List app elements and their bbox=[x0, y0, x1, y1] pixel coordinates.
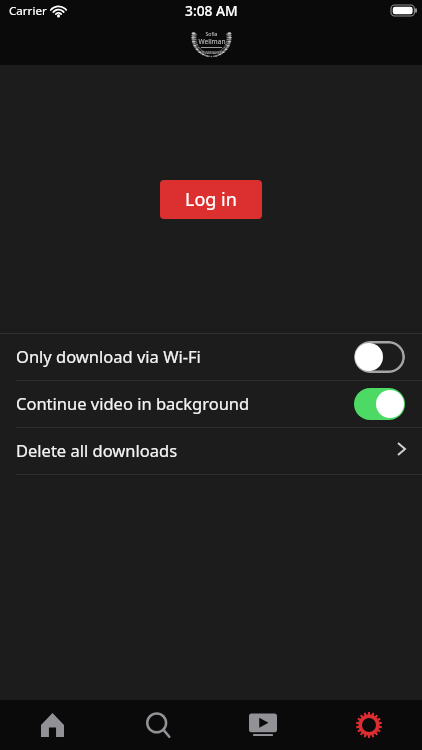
button[interactable]: Continue video in background bbox=[0, 381, 422, 427]
staticText: FILMMAKER bbox=[201, 50, 222, 55]
staticText: Only download via Wi-Fi bbox=[16, 345, 201, 367]
staticText: Wellman bbox=[198, 37, 226, 46]
button[interactable]: Home bbox=[0, 700, 105, 750]
staticText: 3:08 AM bbox=[185, 1, 238, 20]
staticText: Carrier bbox=[9, 3, 47, 19]
button[interactable]: On bbox=[354, 388, 405, 420]
button[interactable]: Search bbox=[105, 700, 210, 750]
staticText: Delete all downloads bbox=[16, 439, 178, 461]
button[interactable]: Settings bbox=[316, 700, 422, 750]
staticText: Sofia bbox=[205, 30, 218, 37]
staticText: Continue video in background bbox=[16, 392, 250, 414]
button[interactable]: Videos bbox=[210, 700, 316, 750]
staticText: Log in bbox=[185, 187, 237, 212]
button[interactable]: Log in bbox=[160, 180, 262, 219]
button[interactable]: Delete all downloads bbox=[0, 428, 422, 474]
button[interactable]: Only download via Wi-Fi bbox=[0, 334, 422, 380]
button[interactable]: Off bbox=[354, 341, 405, 373]
